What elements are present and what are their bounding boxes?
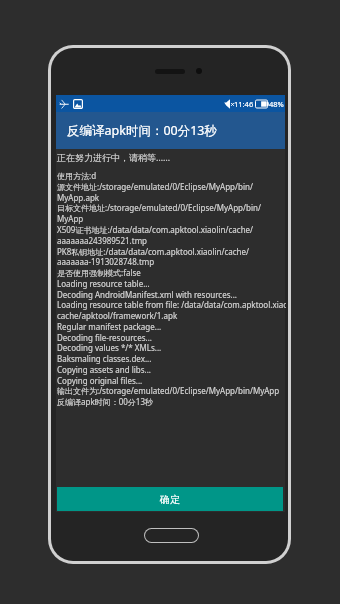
staticText: 目标文件地址:/storage/emulated/0/Eclipse/MyApp… <box>57 202 261 213</box>
staticText: Regular manifest package... <box>57 321 162 332</box>
button[interactable]: 确定 <box>57 487 283 511</box>
staticText: MyApp <box>57 213 84 224</box>
staticText: 源文件地址:/storage/emulated/0/Eclipse/MyApp/… <box>57 181 253 192</box>
staticText: cache/apktool/framework/1.apk <box>57 310 178 321</box>
button[interactable]: 反编译apk时间：00分13秒 <box>56 112 285 149</box>
staticText: Copying assets and libs... <box>57 364 151 375</box>
button[interactable]: Home <box>145 529 198 542</box>
staticText: aaaaaaa-1913028748.tmp <box>57 256 155 267</box>
staticText: X509证书地址:/data/data/com.apktool.xiaolin/… <box>57 224 254 235</box>
staticText: Decoding values */* XMLs... <box>57 342 162 353</box>
staticText: 是否使用强制模式:false <box>57 267 141 278</box>
staticText: 确定 <box>160 493 180 506</box>
staticText: MyApp.apk <box>57 192 100 203</box>
staticText: 输出文件为:/storage/emulated/0/Eclipse/MyApp/… <box>57 385 280 396</box>
staticText: 11:46 <box>234 99 254 109</box>
staticText: Decoding file-resources... <box>57 332 152 343</box>
staticText: PK8私钥地址:/data/data/com.apktool.xiaolin/c… <box>57 246 250 257</box>
staticText: 使用方法:d <box>57 170 97 181</box>
staticText: 反编译apk时间：00分13秒 <box>57 396 153 407</box>
staticText: Loading resource table from file: /data/… <box>57 299 286 310</box>
staticText: Baksmaling classes.dex... <box>57 353 152 364</box>
staticText: aaaaaaa243989521.tmp <box>57 235 148 246</box>
staticText: Decoding AndroidManifest.xml with resour… <box>57 289 237 300</box>
staticText: 48% <box>269 99 284 109</box>
staticText: Copying original files... <box>57 375 143 386</box>
staticText: 反编译apk时间：00分13秒 <box>67 122 217 139</box>
staticText: 正在努力进行中，请稍等…… <box>57 151 171 163</box>
staticText: Loading resource table... <box>57 278 150 289</box>
